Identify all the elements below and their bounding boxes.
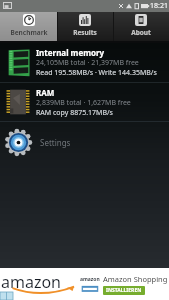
button[interactable]: RAM <box>0 83 169 121</box>
staticText: Results <box>73 28 97 37</box>
other: Benchmark <box>23 14 35 26</box>
staticText: Read 195.58MB/s · Write 144.35MB/s <box>36 68 157 78</box>
staticText: amazon <box>1 271 62 293</box>
staticText: amazon <box>80 276 100 283</box>
staticText: 18:21 <box>150 1 168 11</box>
other: About <box>135 14 147 26</box>
staticText: RAM copy 8875.17MB/s <box>36 108 113 118</box>
button[interactable]: About <box>113 12 169 41</box>
staticText: RAM <box>36 87 55 98</box>
staticText: 24,105MB total · 21,397MB free <box>36 58 139 68</box>
button[interactable]: Settings <box>0 122 169 162</box>
button[interactable]: amazon <box>0 268 169 300</box>
staticText: 2,839MB total · 1,627MB free <box>36 98 131 108</box>
staticText: Internal memory <box>36 47 105 58</box>
staticText: Benchmark <box>10 28 48 37</box>
button[interactable]: Internal memory <box>0 43 169 82</box>
button[interactable]: Benchmark <box>0 12 57 41</box>
staticText: INSTALLIEREN <box>106 287 142 294</box>
staticText: Settings <box>40 137 71 148</box>
button[interactable]: INSTALLIEREN <box>103 286 145 295</box>
other: Results <box>79 14 91 26</box>
staticText: About <box>131 28 151 37</box>
staticText: Amazon Shopping <box>103 274 168 284</box>
button[interactable]: Results <box>57 12 113 41</box>
